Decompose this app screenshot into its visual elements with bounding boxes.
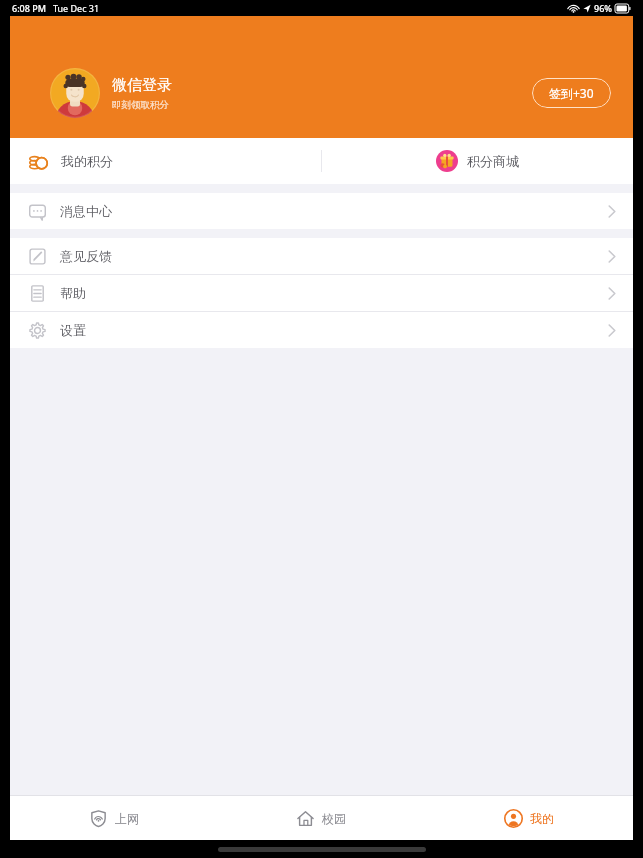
- staticText: 上网: [115, 811, 139, 826]
- staticText: 积分商城: [467, 153, 519, 169]
- button[interactable]: 帮助: [10, 275, 633, 311]
- staticText: 即刻领取积分: [112, 99, 169, 111]
- button[interactable]: 意见反馈: [10, 238, 633, 274]
- staticText: 我的积分: [61, 153, 113, 169]
- button[interactable]: 我的积分: [10, 138, 321, 184]
- button[interactable]: 签到+30: [532, 78, 611, 108]
- button[interactable]: 积分商城: [322, 138, 633, 184]
- staticText: 我的: [530, 811, 554, 826]
- button[interactable]: 设置: [10, 312, 633, 348]
- button[interactable]: 消息中心: [10, 193, 633, 229]
- button[interactable]: 校园: [217, 796, 425, 840]
- staticText: 帮助: [60, 285, 86, 301]
- staticText: 6:08 PM: [12, 2, 46, 14]
- staticText: 签到+30: [549, 85, 594, 101]
- staticText: Tue Dec 31: [53, 2, 100, 14]
- staticText: 96%: [594, 2, 612, 14]
- staticText: 微信登录: [112, 76, 172, 95]
- staticText: 校园: [322, 811, 346, 826]
- staticText: 设置: [60, 322, 86, 338]
- button[interactable]: 微信登录: [50, 68, 172, 118]
- staticText: 意见反馈: [60, 248, 112, 264]
- button[interactable]: 我的: [425, 796, 633, 840]
- button[interactable]: 上网: [10, 796, 217, 840]
- staticText: 消息中心: [60, 203, 112, 219]
